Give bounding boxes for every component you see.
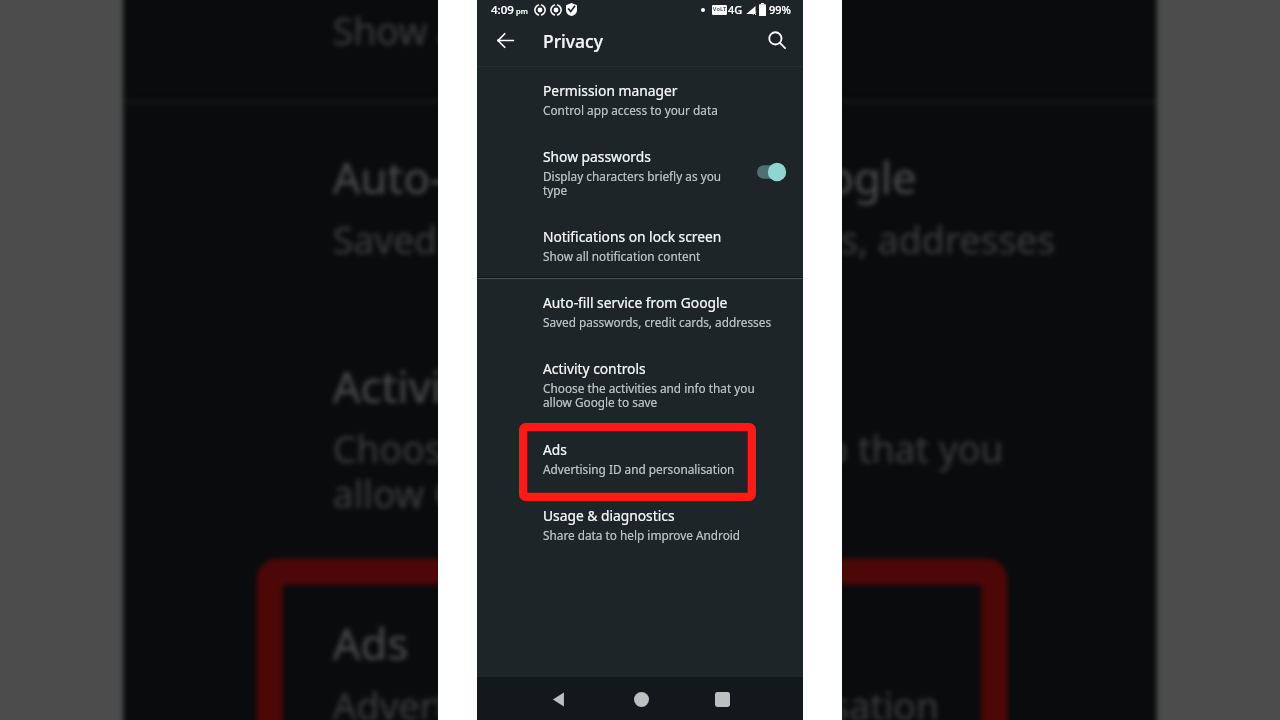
staticText: Display characters briefly as you type: [543, 168, 722, 199]
staticText: Advertising ID and personalisation: [333, 679, 941, 720]
button[interactable]: Home: [620, 678, 662, 720]
staticText: Control app access to your data: [543, 102, 718, 118]
button[interactable]: Ads: [124, 581, 1156, 720]
staticText: 4G: [728, 2, 743, 17]
staticText: Ads: [543, 440, 567, 459]
button[interactable]: Notifications on lock screen: [477, 217, 803, 270]
staticText: 99%: [769, 2, 791, 17]
button[interactable]: Auto-fill service from Google: [477, 283, 803, 336]
staticText: Permission manager: [543, 81, 678, 100]
staticText: Saved passwords, credit cards, addresses: [333, 213, 1058, 264]
staticText: pm: [516, 6, 528, 16]
staticText: 4:09: [491, 2, 514, 18]
button[interactable]: Show passwords toggle: [749, 155, 793, 189]
staticText: Auto-fill service from Google: [543, 293, 728, 312]
button[interactable]: Recent apps: [701, 678, 743, 720]
button[interactable]: Auto-fill service from Google: [124, 115, 1156, 283]
staticText: Show all notification content: [543, 248, 701, 264]
button[interactable]: Activity controls: [477, 349, 803, 417]
staticText: Show all notification content: [333, 4, 833, 55]
staticText: Choose the activities and info that you …: [543, 380, 755, 411]
button[interactable]: Usage & diagnostics: [477, 496, 803, 549]
staticText: Share data to help improve Android: [543, 527, 741, 543]
staticText: Saved passwords, credit cards, addresses: [543, 314, 772, 330]
staticText: Notifications on lock screen: [543, 227, 722, 246]
button[interactable]: Show passwords: [477, 137, 803, 205]
staticText: Auto-fill service from Google: [333, 147, 919, 207]
button[interactable]: Navigate up: [487, 22, 523, 58]
staticText: Activity controls: [333, 356, 659, 416]
staticText: Usage & diagnostics: [543, 506, 675, 525]
button[interactable]: Permission manager: [477, 71, 803, 124]
staticText: Activity controls: [543, 359, 646, 378]
button[interactable]: Activity controls: [124, 324, 1156, 539]
staticText: Choose the activities and info that you …: [333, 422, 1004, 520]
button[interactable]: Notifications on lock screen: [124, 0, 1156, 74]
button[interactable]: Search: [759, 22, 795, 58]
staticText: Ads: [333, 612, 409, 673]
staticText: Advertising ID and personalisation: [543, 461, 735, 477]
staticText: Show passwords: [543, 147, 651, 166]
staticText: VoLTE: [712, 5, 727, 15]
button[interactable]: Back: [538, 678, 580, 720]
staticText: Privacy: [543, 29, 603, 53]
button[interactable]: Ads: [477, 430, 803, 483]
